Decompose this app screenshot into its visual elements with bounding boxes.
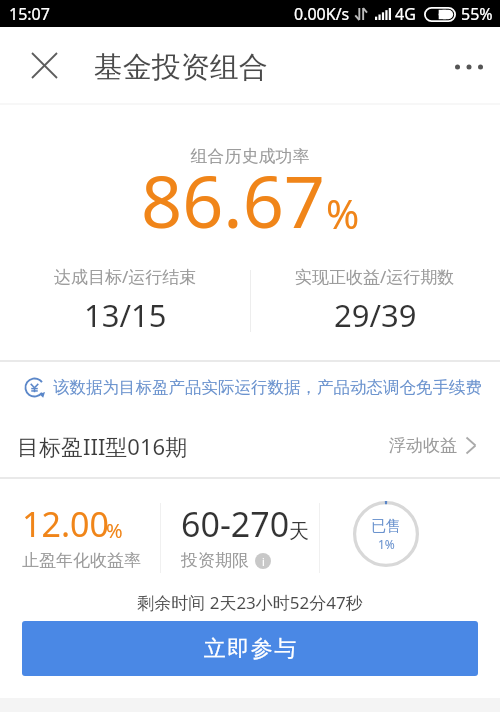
button[interactable]: 立即参与	[22, 621, 478, 676]
staticText: 目标盈III型016期	[17, 431, 188, 461]
staticText: 12.00	[22, 501, 109, 547]
staticText: 60-270	[181, 501, 290, 547]
staticText: 13/15	[84, 294, 167, 336]
staticText: 立即参与	[203, 635, 297, 663]
staticText: 已售	[371, 517, 401, 536]
staticText: 1%	[378, 536, 395, 552]
staticText: 0.00K/s	[294, 3, 350, 25]
staticText: 浮动收益	[389, 435, 457, 456]
staticText: 基金投资组合	[94, 49, 268, 86]
staticText: 该数据为目标盈产品实际运行数据，产品动态调仓免手续费	[53, 377, 482, 398]
staticText: 止盈年化收益率	[22, 550, 141, 571]
staticText: 55%	[461, 3, 493, 25]
staticText: 实现正收益/运行期数	[295, 265, 455, 288]
button[interactable]: More options	[443, 39, 495, 91]
staticText: 组合历史成功率	[0, 146, 500, 167]
staticText: 86.67	[141, 151, 326, 249]
staticText: %	[326, 186, 360, 240]
staticText: %	[106, 517, 123, 544]
staticText: 4G	[395, 3, 416, 25]
staticText: 剩余时间 2天23小时52分47秒	[0, 591, 500, 614]
button[interactable]: 目标盈III型016期	[0, 417, 500, 474]
staticText: 达成目标/运行结束	[54, 265, 197, 288]
staticText: 天	[289, 519, 309, 544]
staticText: 15:07	[9, 3, 50, 25]
staticText: i	[262, 554, 265, 569]
staticText: 29/39	[334, 294, 417, 336]
staticText: 投资期限	[181, 550, 249, 571]
button[interactable]: Close	[20, 41, 69, 90]
